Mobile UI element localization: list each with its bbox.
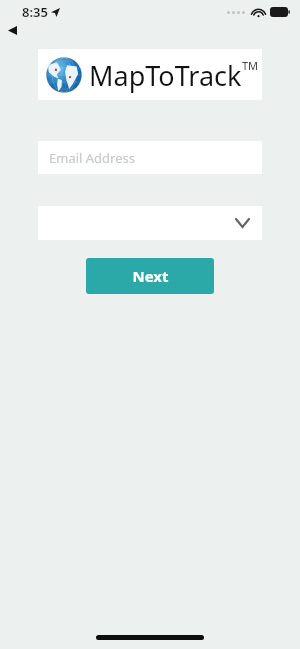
staticText: TM xyxy=(242,58,259,73)
staticText: Next xyxy=(132,266,169,286)
button[interactable]: Next xyxy=(86,258,214,294)
button[interactable]: Select option xyxy=(38,206,262,240)
staticText: Email Address xyxy=(49,149,135,167)
button[interactable]: Email Address xyxy=(38,141,262,174)
staticText: 8:35 xyxy=(22,3,48,21)
button[interactable]: Back xyxy=(2,21,22,39)
staticText: MapToTrack xyxy=(89,57,242,94)
